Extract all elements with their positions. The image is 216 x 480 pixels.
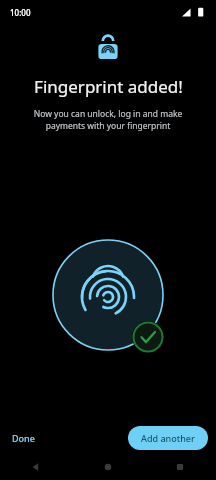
staticText: 10:00 (10, 7, 31, 18)
button[interactable]: Add another (128, 426, 208, 450)
button[interactable]: Done (6, 427, 41, 449)
button[interactable]: Back (0, 454, 72, 480)
staticText: Fingerprint added! (34, 75, 183, 98)
staticText: Now you can unlock, log in and make paym… (18, 108, 198, 132)
other: Fingerprint enrolled (0, 0, 216, 480)
button[interactable]: Home (72, 454, 144, 480)
button[interactable]: Recent apps (144, 454, 216, 480)
staticText: Add another (141, 432, 195, 444)
staticText: Done (12, 432, 35, 444)
